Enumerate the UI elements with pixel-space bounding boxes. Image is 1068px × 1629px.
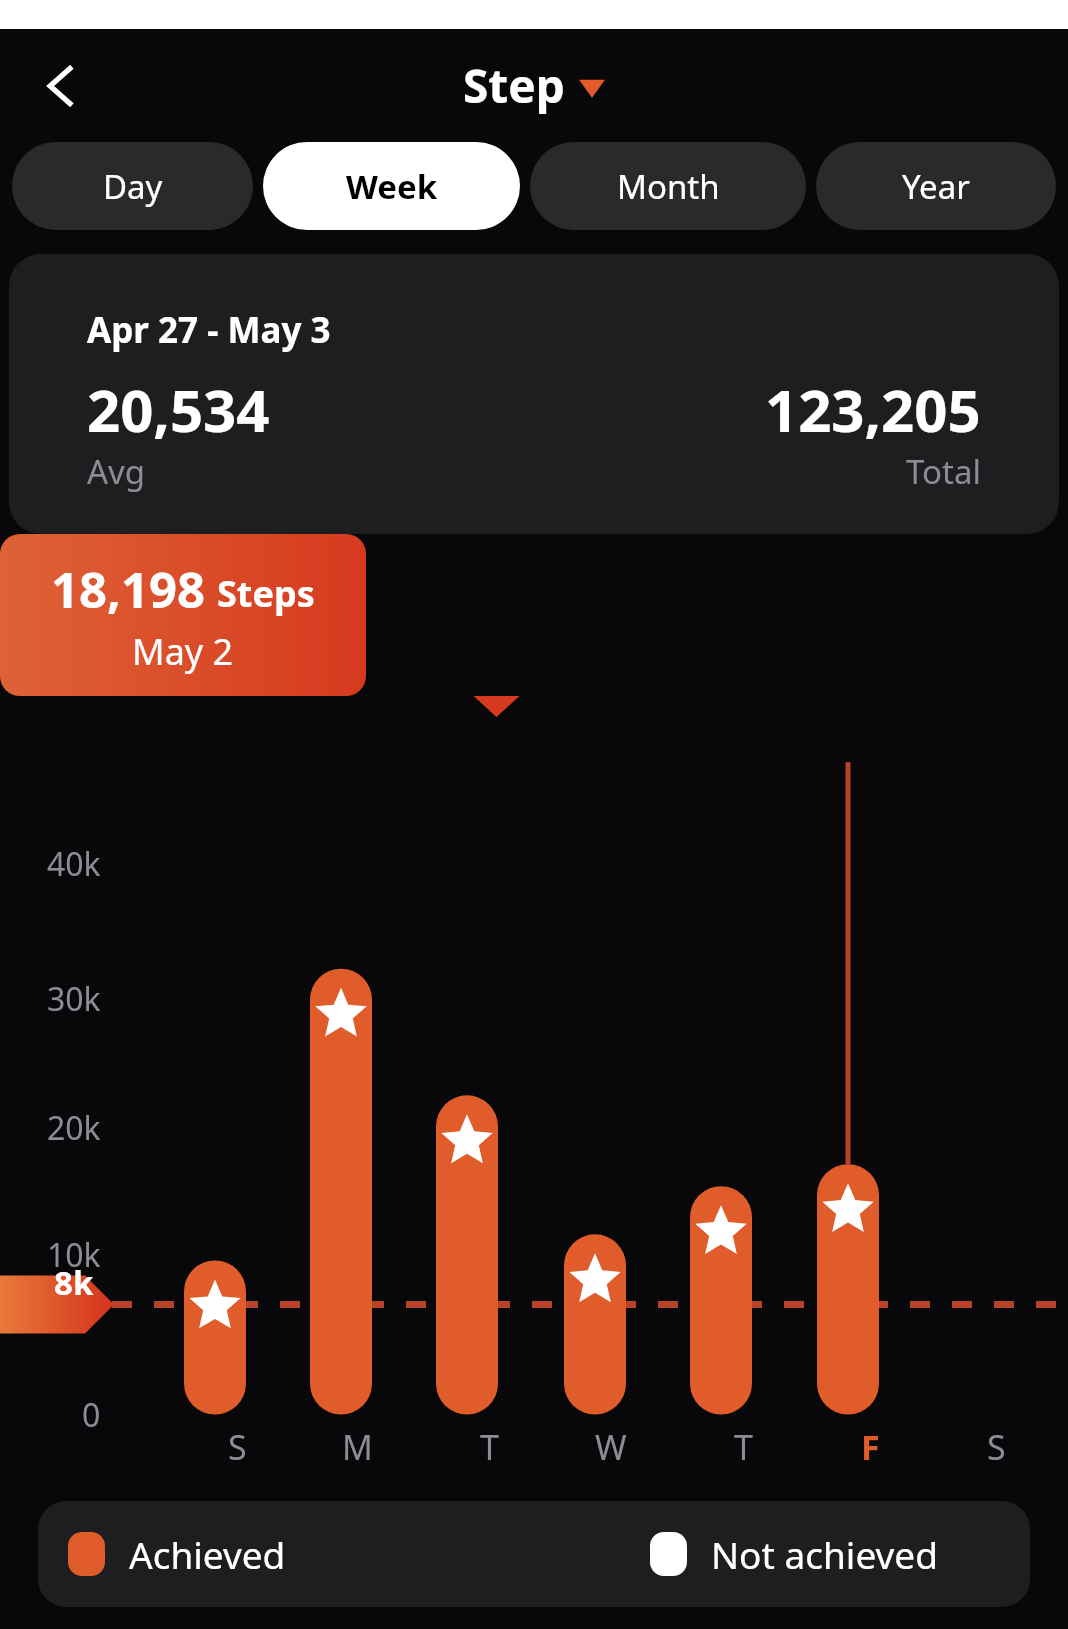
staticText: Avg <box>87 449 146 494</box>
staticText: 8k <box>54 1260 94 1305</box>
button[interactable]: Back <box>26 51 96 121</box>
staticText: 40k <box>47 842 101 886</box>
button[interactable]: Week <box>263 142 520 230</box>
button[interactable]: Year <box>816 142 1056 230</box>
staticText: S <box>228 1424 247 1470</box>
staticText: M <box>342 1424 373 1470</box>
staticText: 20,534 <box>87 370 270 449</box>
button[interactable]: Apr 27 - May 3 <box>9 254 1059 534</box>
staticText: Week <box>346 164 438 209</box>
staticText: Month <box>617 164 720 209</box>
staticText: May 2 <box>132 627 234 676</box>
staticText: Year <box>902 164 970 209</box>
button[interactable]: Achieved <box>38 1501 1030 1607</box>
staticText: W <box>595 1424 627 1470</box>
staticText: Apr 27 - May 3 <box>87 306 331 354</box>
button[interactable]: Day <box>12 142 253 230</box>
staticText: Step <box>463 54 565 117</box>
staticText: 123,205 <box>765 370 981 449</box>
staticText: 0 <box>82 1393 101 1437</box>
staticText: T <box>734 1424 753 1470</box>
staticText: Not achieved <box>711 1529 938 1579</box>
staticText: 30k <box>47 977 101 1021</box>
staticText: Total <box>906 449 981 494</box>
staticText: 10k <box>47 1233 101 1277</box>
button[interactable]: Step <box>463 54 605 117</box>
staticText: Achieved <box>129 1529 286 1579</box>
staticText: F <box>861 1424 880 1470</box>
button[interactable]: Month <box>530 142 806 230</box>
staticText: 18,198 <box>51 556 206 623</box>
staticText: Steps <box>217 569 315 618</box>
staticText: T <box>480 1424 499 1470</box>
button[interactable]: 18,198 <box>0 534 366 696</box>
staticText: S <box>987 1424 1006 1470</box>
staticText: 20k <box>47 1106 101 1150</box>
staticText: Day <box>103 164 163 209</box>
